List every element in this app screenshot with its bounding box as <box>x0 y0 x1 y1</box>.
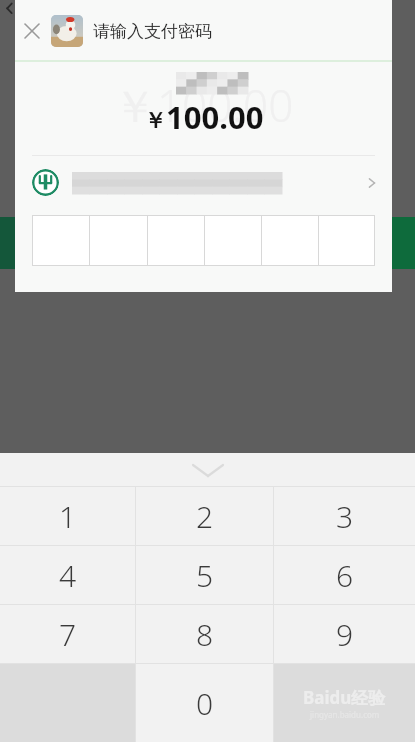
button[interactable]: 0 <box>136 664 273 742</box>
staticText: 4 <box>59 555 77 596</box>
staticText: 100.00 <box>166 96 264 138</box>
staticText: ￥100.00 <box>113 75 294 135</box>
button[interactable]: 3 <box>274 487 415 545</box>
button[interactable]: 关闭 <box>15 14 49 48</box>
staticText: 2 <box>196 496 214 537</box>
staticText: 8 <box>196 614 214 655</box>
button[interactable]: 密码位 3 <box>148 215 204 266</box>
button[interactable]: 8 <box>136 605 273 663</box>
button[interactable]: 2 <box>136 487 273 545</box>
staticText: 3 <box>336 496 354 537</box>
button[interactable]: 4 <box>0 546 135 604</box>
staticText: 5 <box>196 555 214 596</box>
button[interactable]: 5 <box>136 546 273 604</box>
staticText: 1 <box>59 496 77 537</box>
staticText: 9 <box>336 614 354 655</box>
staticText: 请输入支付密码 <box>93 21 212 42</box>
button[interactable]: 1 <box>0 487 135 545</box>
button[interactable]: 6 <box>274 546 415 604</box>
button[interactable]: 密码位 2 <box>90 215 147 266</box>
staticText: 7 <box>59 614 77 655</box>
button[interactable]: 9 <box>274 605 415 663</box>
staticText: ￥ <box>144 107 166 135</box>
staticText: 0 <box>196 683 214 724</box>
staticText: jingyan.baidu.com <box>310 709 380 720</box>
button[interactable]: 删除 <box>274 664 415 742</box>
button[interactable]: 密码位 1 <box>32 215 89 266</box>
button[interactable] <box>15 156 392 209</box>
button[interactable]: 7 <box>0 605 135 663</box>
button[interactable]: 密码位 5 <box>262 215 318 266</box>
staticText: Baidu经验 <box>303 686 386 709</box>
button[interactable]: 密码位 4 <box>205 215 261 266</box>
button[interactable]: 收起键盘 <box>0 453 415 487</box>
button[interactable]: 密码位 6 <box>319 215 375 266</box>
staticText: 6 <box>336 555 354 596</box>
